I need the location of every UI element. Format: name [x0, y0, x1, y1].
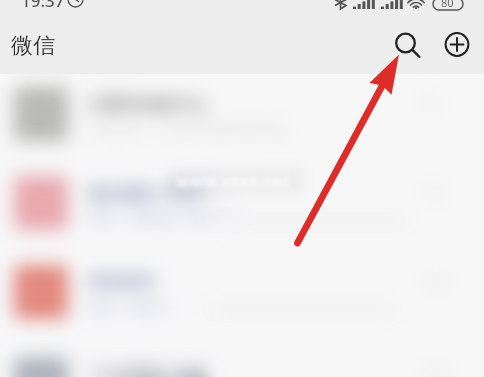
button[interactable]: 李明同学	[0, 265, 484, 353]
staticText: 80	[441, 0, 454, 10]
staticText: www.xxxx.net	[176, 170, 290, 192]
staticText: 你好，请问这个功能怎么	[88, 209, 242, 227]
staticText: 李明同学	[88, 272, 156, 293]
staticText: 订阅号消息中心	[88, 94, 207, 115]
button[interactable]: 微信团队小助手	[0, 176, 484, 264]
button[interactable]: 订阅号消息中心	[0, 87, 484, 175]
button[interactable]: Search	[385, 23, 428, 66]
button[interactable]: 工作群聊讨论组	[0, 357, 484, 377]
staticText: 微信团队小助手	[88, 183, 207, 204]
button[interactable]: New chat	[435, 23, 478, 66]
staticText: 19:37	[21, 0, 65, 12]
staticText: 微信	[11, 32, 55, 60]
staticText: 工作群聊讨论组	[88, 364, 207, 377]
